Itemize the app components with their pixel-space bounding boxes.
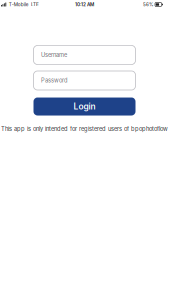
button[interactable]: Login: [33, 97, 135, 115]
staticText: 10:12 AM: [75, 2, 94, 7]
staticText: Password: [41, 77, 68, 84]
button[interactable]: Username: [33, 45, 135, 64]
staticText: This app is only intended for registered…: [1, 125, 168, 132]
staticText: Login: [73, 101, 95, 112]
staticText: T-Mobile: [9, 2, 29, 7]
button[interactable]: Password: [33, 71, 135, 90]
staticText: LTE: [31, 2, 39, 7]
staticText: 56%: [143, 2, 153, 7]
staticText: Username: [41, 51, 67, 58]
